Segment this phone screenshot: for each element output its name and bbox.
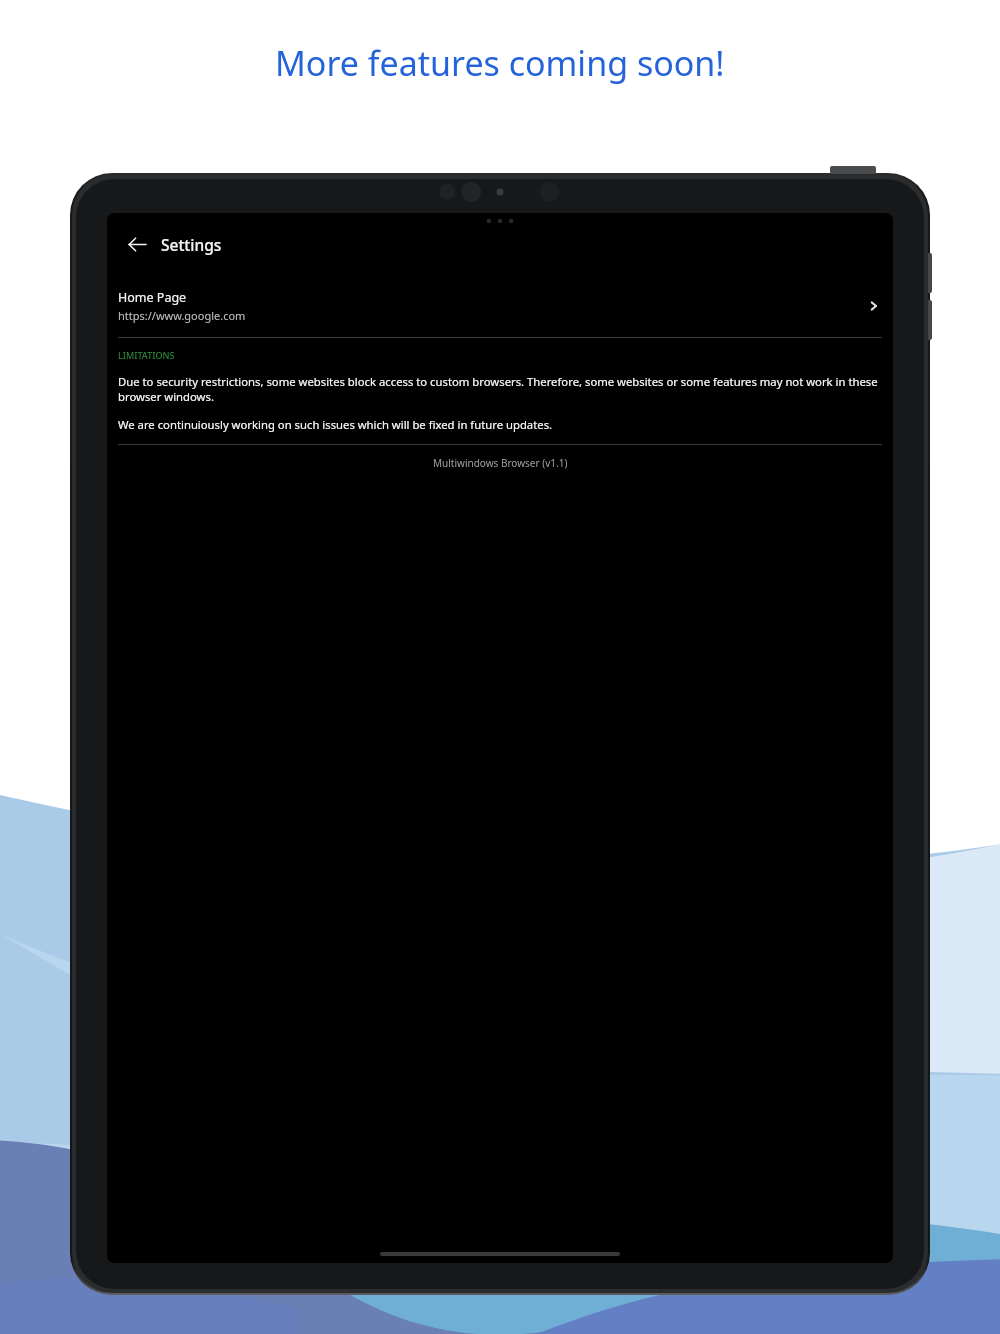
staticText: Multiwindows Browser (v1.1): [433, 456, 568, 470]
button[interactable]: Home Page: [107, 275, 893, 337]
staticText: We are continuiously working on such iss…: [118, 417, 553, 432]
staticText: Settings: [161, 234, 222, 255]
button[interactable]: Back: [115, 222, 159, 266]
staticText: LIMITATIONS: [118, 349, 175, 361]
staticText: Due to security restrictions, some websi…: [118, 374, 882, 404]
staticText: More features coming soon!: [275, 40, 725, 86]
staticText: Home Page: [118, 289, 187, 306]
staticText: https://www.google.com: [118, 308, 246, 323]
